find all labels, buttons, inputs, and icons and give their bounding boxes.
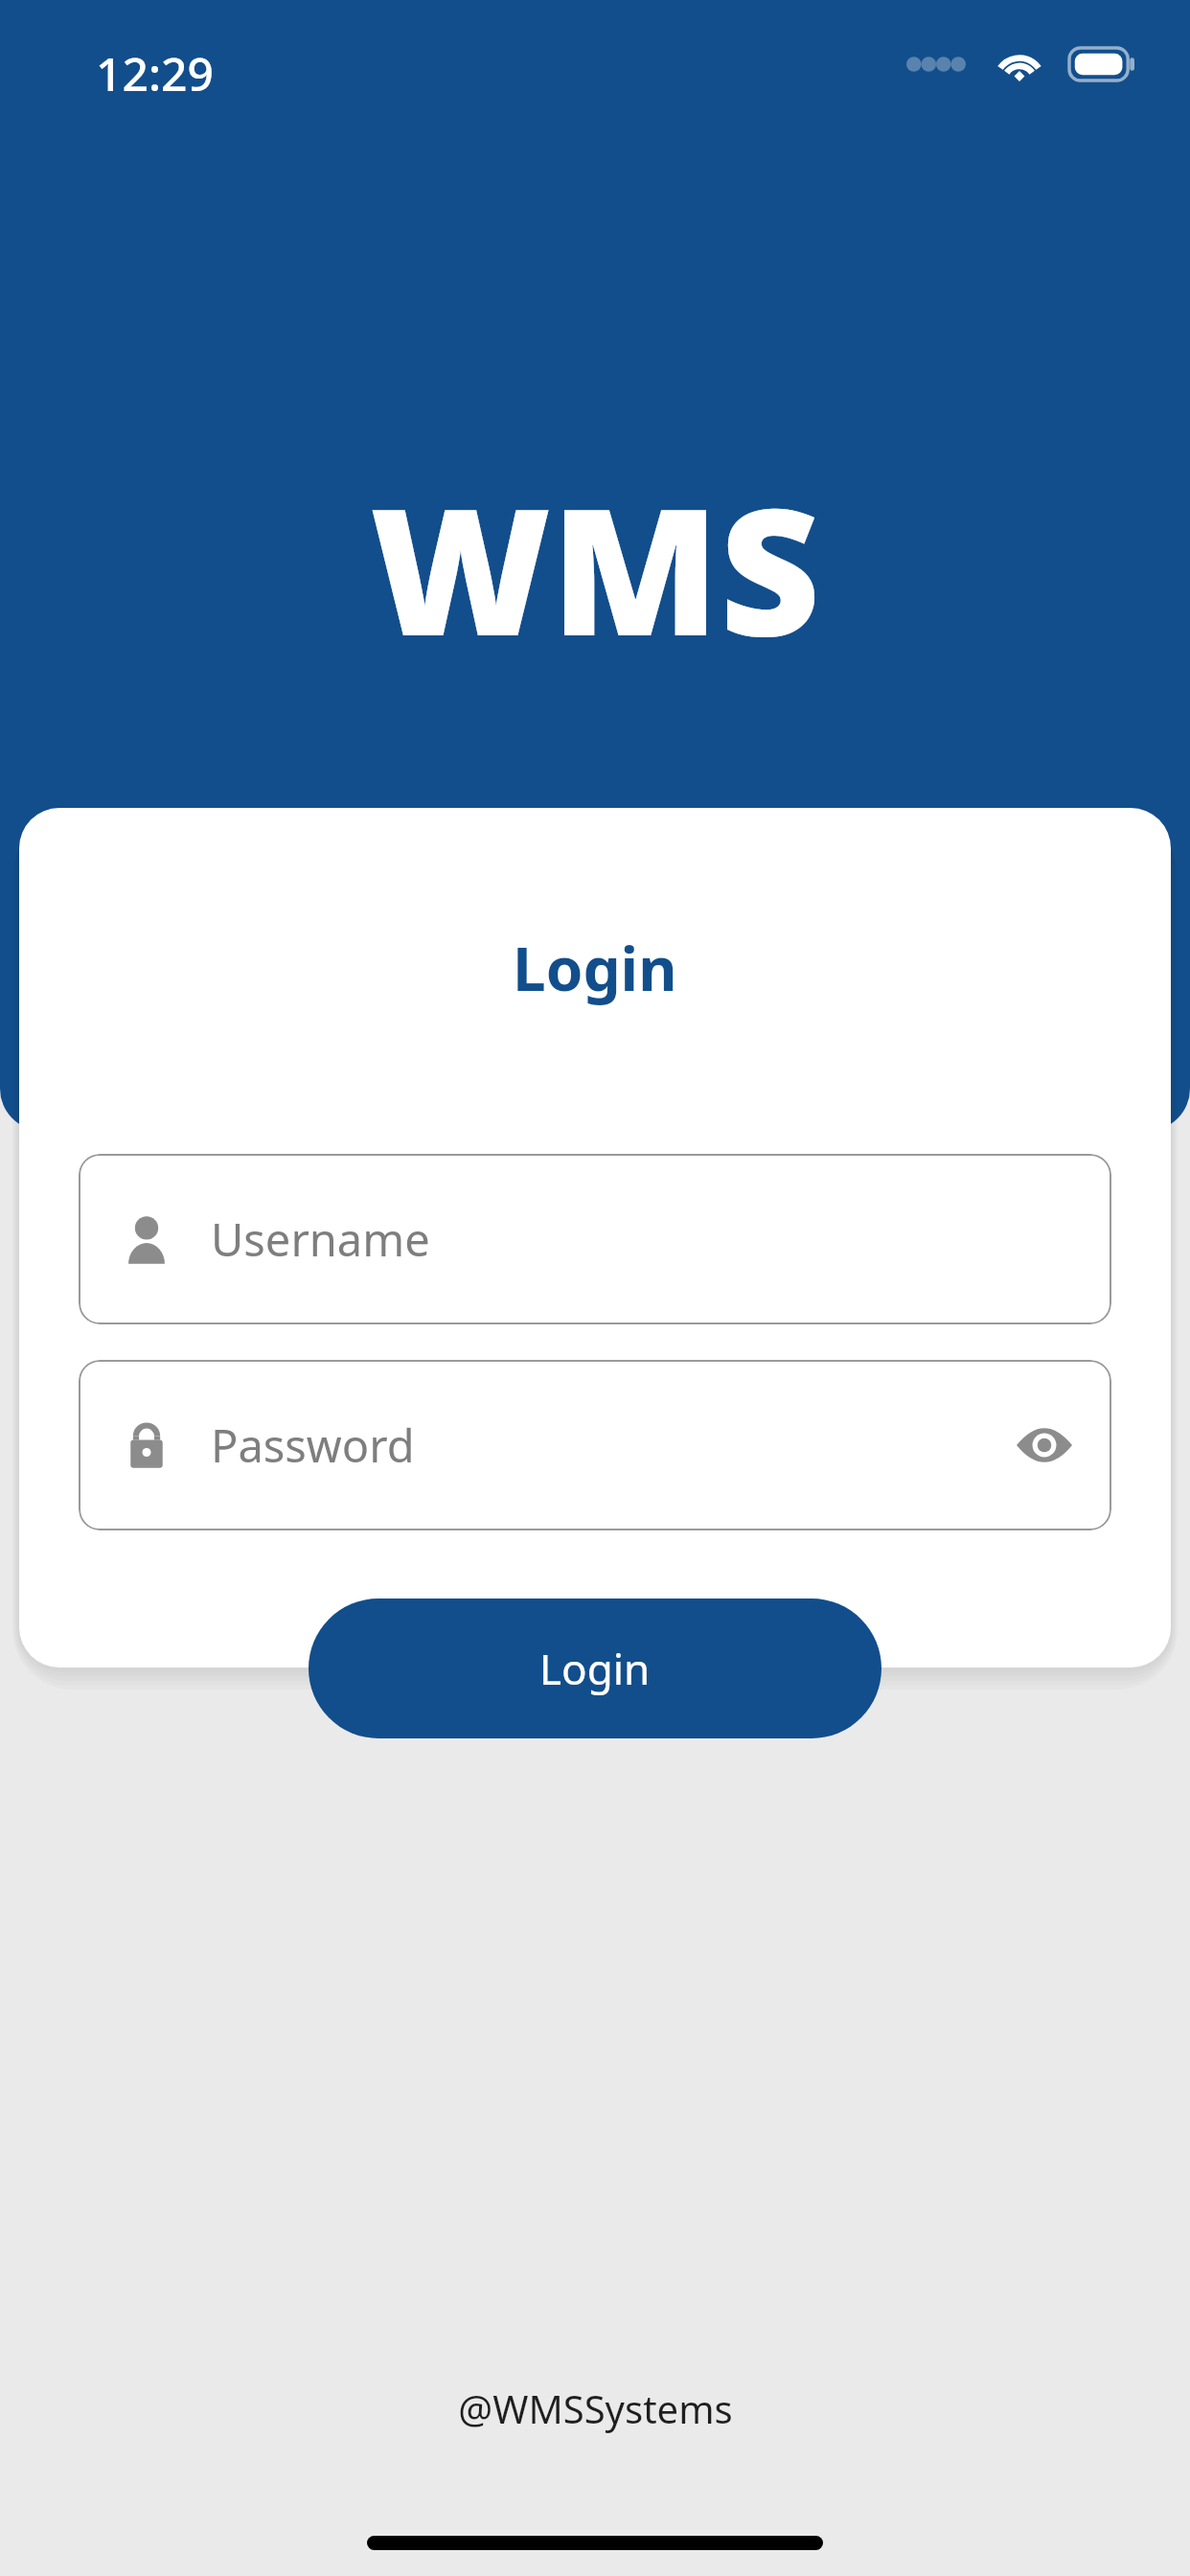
staticText: Login (539, 1640, 651, 1697)
button[interactable]: Password (79, 1360, 1111, 1530)
button[interactable]: Username (79, 1154, 1111, 1324)
staticText: WMS (370, 448, 821, 686)
button[interactable]: Login (309, 1598, 881, 1738)
staticText: @WMSSystems (458, 2382, 733, 2434)
staticText: Password (211, 1414, 415, 1476)
staticText: 12:29 (96, 42, 214, 104)
button[interactable]: Show password (998, 1399, 1090, 1491)
staticText: Login (513, 928, 677, 1008)
staticText: Username (211, 1208, 430, 1270)
